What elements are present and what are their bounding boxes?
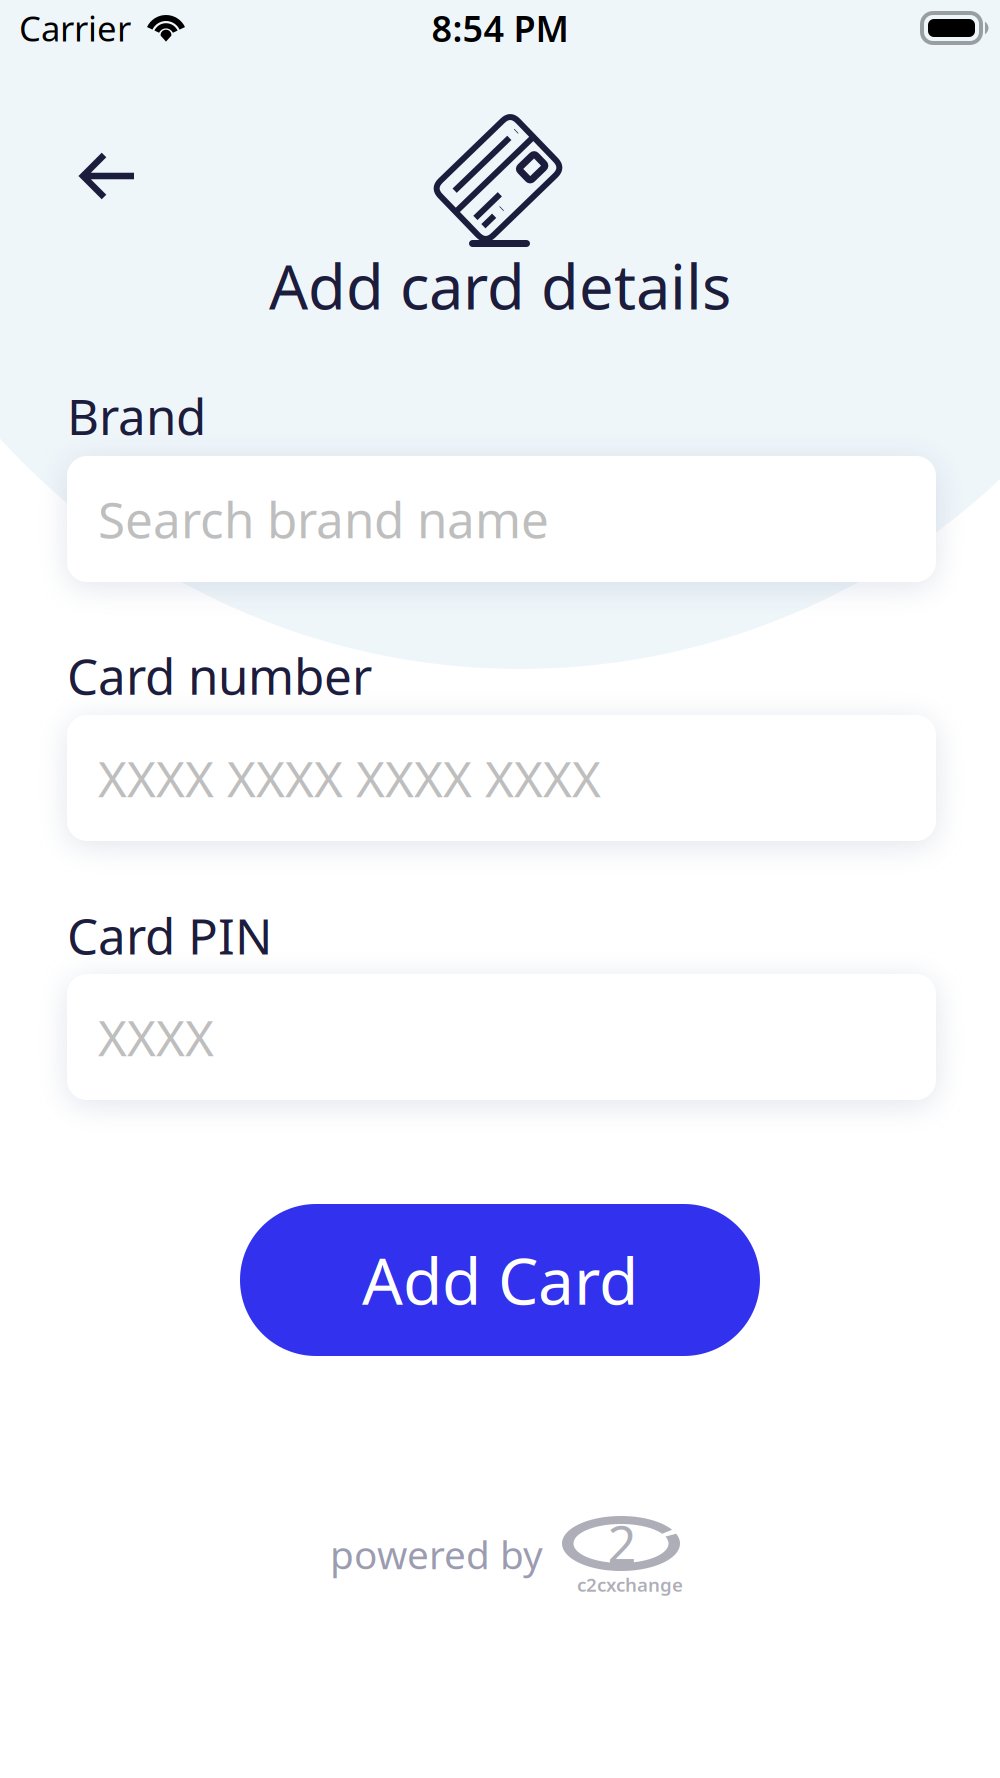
staticText: Carrier [19,5,131,51]
staticText: Brand [67,383,206,449]
button[interactable]: Search brand name [67,456,936,582]
staticText: Card PIN [67,903,272,968]
staticText: 8:54 PM [431,4,568,52]
button[interactable]: Add Card [240,1204,760,1356]
staticText: Card number [67,643,372,708]
staticText: c2cxchange [577,1572,683,1597]
staticText: 2 [607,1510,636,1577]
button[interactable]: XXXX [67,974,936,1100]
staticText: Search brand name [98,486,549,552]
staticText: powered by [330,1528,543,1580]
staticText: XXXX XXXX XXXX XXXX [98,745,601,811]
button[interactable]: XXXX XXXX XXXX XXXX [67,715,936,841]
button[interactable]: Back [56,128,161,224]
staticText: XXXX [98,1004,214,1070]
staticText: Add Card [362,1237,638,1322]
staticText: Add card details [269,245,731,326]
